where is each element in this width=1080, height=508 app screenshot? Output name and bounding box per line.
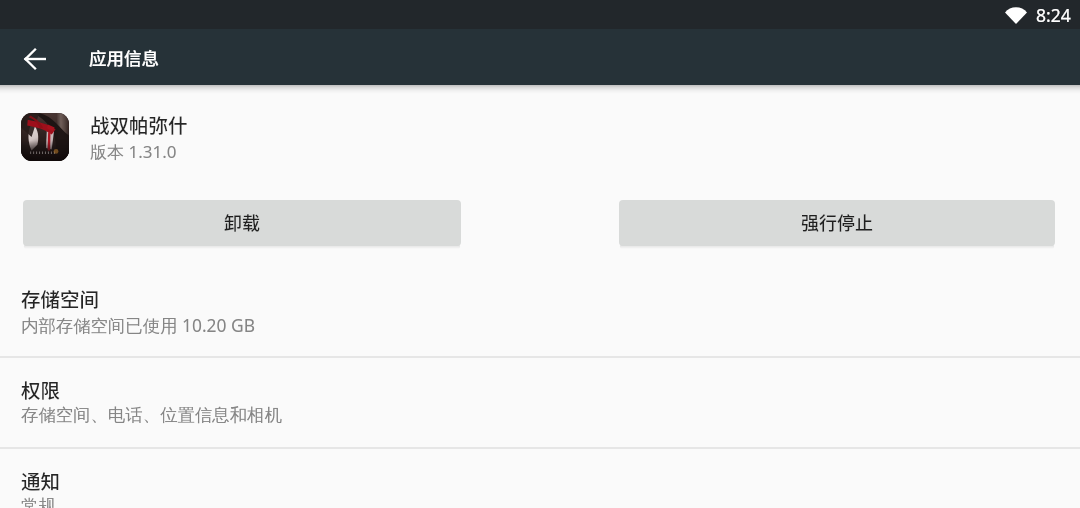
button[interactable]: 通知 — [0, 449, 1080, 508]
button[interactable]: 存储空间 — [0, 270, 1080, 356]
staticText: 存储空间、电话、位置信息和相机 — [21, 404, 282, 426]
staticText: 战双帕弥什 — [90, 110, 188, 138]
button[interactable]: 卸载 — [23, 200, 461, 246]
button[interactable]: Back — [11, 35, 59, 83]
staticText: 通知 — [21, 466, 61, 494]
staticText: 应用信息 — [89, 45, 159, 70]
staticText: 强行停止 — [801, 209, 873, 235]
staticText: 内部存储空间已使用 10.20 GB — [21, 313, 255, 337]
staticText: 卸载 — [224, 209, 260, 235]
button[interactable]: 强行停止 — [619, 200, 1055, 246]
staticText: 存储空间 — [21, 284, 100, 312]
staticText: 版本 1.31.0 — [90, 140, 177, 163]
button[interactable]: 权限 — [0, 358, 1080, 447]
staticText: 8:24 — [1036, 3, 1071, 27]
staticText: 常规 — [21, 495, 56, 508]
staticText: 权限 — [21, 375, 61, 403]
